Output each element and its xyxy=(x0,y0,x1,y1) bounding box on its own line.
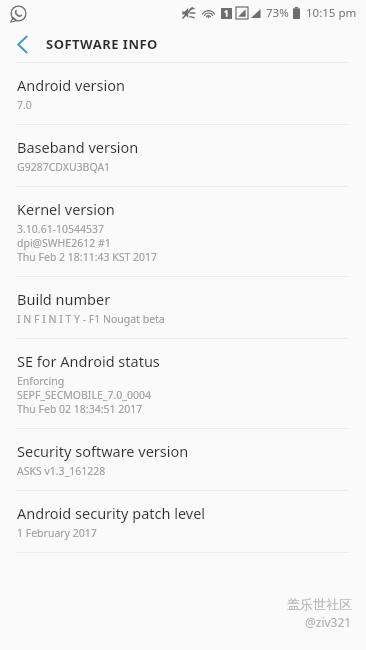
button[interactable]: Android security patch level xyxy=(0,491,366,552)
staticText: ASKS v1.3_161228 xyxy=(17,464,106,478)
staticText: 盖乐世社区 xyxy=(287,596,352,612)
button[interactable]: SE for Android status xyxy=(0,339,366,428)
staticText: Thu Feb 2 18:11:43 KST 2017 xyxy=(17,250,158,264)
staticText: G9287CDXU3BQA1 xyxy=(17,160,111,174)
staticText: 10:15 pm xyxy=(306,5,357,21)
staticText: Enforcing xyxy=(17,374,65,388)
staticText: SE for Android status xyxy=(17,351,160,371)
button[interactable]: Build number xyxy=(0,277,366,338)
staticText: 7.0 xyxy=(17,98,32,112)
staticText: Security software version xyxy=(17,441,189,461)
button[interactable]: Security software version xyxy=(0,429,366,490)
staticText: I N F I N I T Y - F1 Nougat beta xyxy=(17,312,165,326)
button[interactable]: Android version xyxy=(0,63,366,124)
staticText: Thu Feb 02 18:34:51 2017 xyxy=(17,402,143,416)
button[interactable]: Kernel version xyxy=(0,187,366,276)
staticText: SEPF_SECMOBILE_7.0_0004 xyxy=(17,388,151,402)
staticText: @ziv321 xyxy=(305,614,352,630)
staticText: Build number xyxy=(17,289,111,309)
staticText: 3.10.61-10544537 xyxy=(17,222,105,236)
staticText: SOFTWARE INFO xyxy=(46,35,158,53)
staticText: Android security patch level xyxy=(17,503,206,523)
staticText: dpi@SWHE2612 #1 xyxy=(17,236,111,250)
staticText: 1 February 2017 xyxy=(17,526,97,540)
staticText: 73% xyxy=(266,5,289,21)
staticText: Kernel version xyxy=(17,199,115,219)
staticText: Android version xyxy=(17,75,125,95)
button[interactable]: Back xyxy=(0,26,46,62)
staticText: Baseband version xyxy=(17,137,139,157)
button[interactable]: Baseband version xyxy=(0,125,366,186)
